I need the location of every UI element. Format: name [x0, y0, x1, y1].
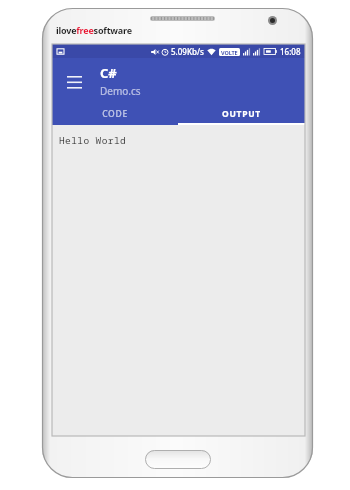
button[interactable]: Open navigation menu [60, 67, 88, 95]
staticText: OUTPUT [222, 108, 261, 120]
staticText: C# [100, 64, 117, 82]
staticText: CODE [102, 108, 128, 120]
button[interactable]: OUTPUT [178, 103, 305, 125]
staticText: 16:08 [280, 46, 301, 57]
staticText: ilovefreesoftware [56, 24, 132, 36]
staticText: 5.09Kb/s [171, 46, 204, 57]
button[interactable]: CODE [52, 103, 178, 125]
button[interactable]: Home [145, 450, 211, 469]
staticText: Hello World [59, 134, 127, 147]
staticText: Demo.cs [100, 84, 141, 98]
staticText: VOLTE [221, 49, 238, 56]
